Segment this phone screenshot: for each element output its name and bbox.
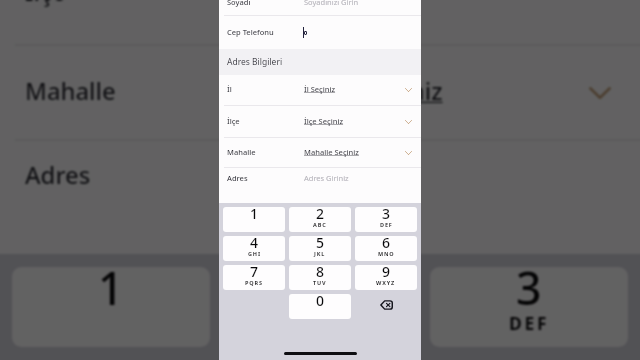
staticText: İlçe Seçiniz — [268, 0, 393, 8]
staticText: 2 — [307, 267, 333, 318]
button[interactable]: 5 — [289, 236, 351, 261]
staticText: Adres Giriniz — [268, 159, 410, 191]
button[interactable]: 3 — [355, 207, 417, 232]
staticText: GHI — [248, 250, 261, 257]
staticText: MNO — [378, 250, 395, 257]
button[interactable]: 7 — [223, 265, 285, 290]
staticText: Mahalle — [227, 147, 256, 157]
button[interactable]: 4 — [223, 236, 285, 261]
staticText: Adres — [227, 173, 248, 183]
staticText: WXYZ — [376, 279, 396, 286]
button[interactable]: Mahalle Seçiniz — [0, 44, 640, 139]
staticText: 6 — [382, 236, 391, 252]
button[interactable]: 2 — [289, 207, 351, 232]
staticText: PQRS — [245, 279, 263, 286]
staticText: Adres Giriniz — [304, 173, 349, 183]
button[interactable]: İlçe Seçiniz — [0, 0, 640, 44]
button[interactable]: 1 — [223, 207, 285, 232]
staticText: DEF — [380, 221, 393, 228]
staticText: Soyadı — [227, 0, 251, 7]
button[interactable]: Cep Telefonu — [219, 16, 421, 49]
staticText: ABC — [298, 311, 342, 335]
button[interactable]: 8 — [289, 265, 351, 290]
staticText: 9 — [382, 265, 391, 281]
staticText: İlçe — [25, 0, 66, 8]
button[interactable]: Adres Giriniz — [219, 167, 421, 203]
staticText: Adres — [25, 159, 91, 191]
button[interactable]: Backspace — [355, 294, 417, 319]
staticText: 1 — [98, 267, 124, 318]
staticText: 7 — [250, 265, 259, 281]
button[interactable]: Adres Giriniz — [0, 139, 640, 253]
staticText: İl Seçiniz — [304, 84, 336, 94]
button[interactable]: 0 — [289, 294, 351, 319]
staticText: Mahalle Seçiniz — [304, 147, 359, 157]
staticText: 5 — [316, 236, 325, 252]
staticText: Cep Telefonu — [227, 27, 274, 37]
staticText: Mahalle — [25, 75, 116, 107]
button[interactable]: 9 — [355, 265, 417, 290]
staticText: 0 — [316, 294, 325, 310]
staticText: DEF — [509, 311, 550, 335]
staticText: İl — [227, 84, 232, 94]
button[interactable]: 3 — [430, 267, 628, 347]
button[interactable]: 2 — [221, 267, 419, 347]
button[interactable]: Mahalle Seçiniz — [219, 137, 421, 167]
button[interactable]: 1 — [12, 267, 210, 347]
staticText: 2 — [316, 207, 325, 223]
staticText: Soyadınızı Girin — [304, 0, 359, 7]
staticText: İlçe — [227, 116, 240, 126]
button[interactable]: İl Seçiniz — [219, 75, 421, 105]
button[interactable]: 6 — [355, 236, 417, 261]
staticText: JKL — [314, 250, 326, 257]
staticText: 4 — [250, 236, 259, 252]
button[interactable]: İlçe Seçiniz — [219, 105, 421, 137]
staticText: ABC — [313, 221, 327, 228]
staticText: 8 — [316, 265, 325, 281]
staticText: TUV — [313, 279, 327, 286]
staticText: 3 — [516, 267, 542, 318]
staticText: 1 — [250, 207, 259, 223]
button[interactable]: Soyadı — [219, 0, 421, 15]
staticText: İlçe Seçiniz — [304, 116, 344, 126]
staticText: Adres Bilgileri — [227, 56, 283, 68]
staticText: 3 — [382, 207, 391, 223]
staticText: Mahalle Seçiniz — [268, 75, 443, 107]
